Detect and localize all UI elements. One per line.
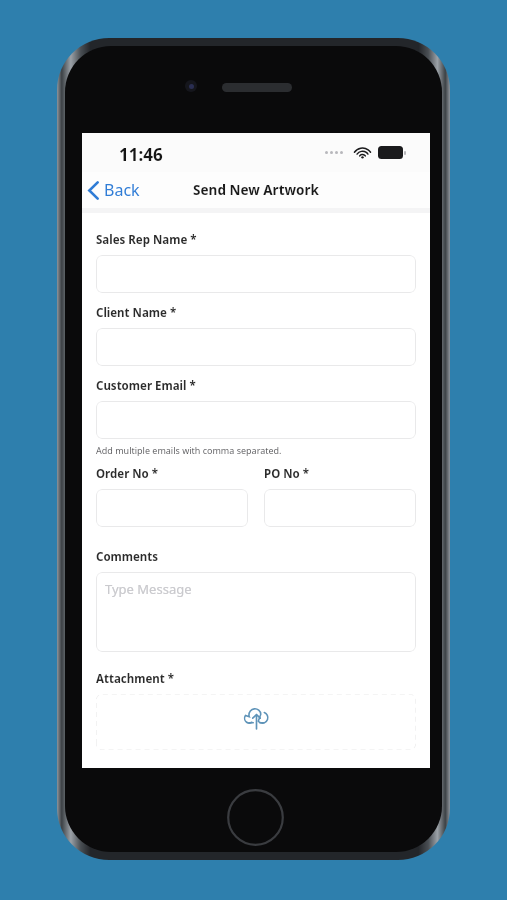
staticText: Add multiple emails with comma separated… [96,444,282,456]
button[interactable]: Type Message [96,572,416,652]
button[interactable]: Back [82,175,150,205]
staticText: Send New Artwork [193,181,319,199]
staticText: PO No * [264,466,309,482]
staticText: 11:46 [119,143,163,166]
staticText: Client Name * [96,305,177,321]
button[interactable] [96,255,416,293]
staticText: Attachment * [96,671,175,687]
button[interactable]: Upload attachment [96,694,416,750]
staticText: Customer Email * [96,378,196,394]
button[interactable] [264,489,416,527]
button[interactable] [96,401,416,439]
staticText: Comments [96,549,159,565]
button[interactable] [96,489,248,527]
staticText: Type Message [105,580,192,598]
staticText: Sales Rep Name * [96,232,197,248]
button[interactable] [96,328,416,366]
staticText: Back [104,179,140,201]
staticText: Order No * [96,466,159,482]
